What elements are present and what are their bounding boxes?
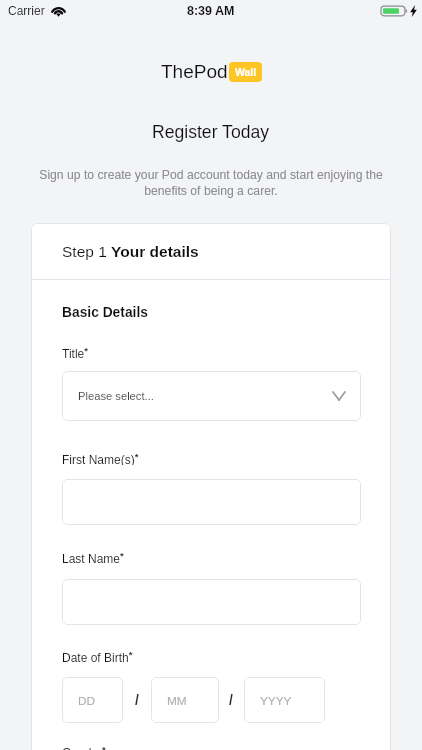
staticText: Sign up to create your Pod account today… [33, 168, 389, 197]
staticText: Last Name* [62, 550, 124, 564]
staticText: Register Today [152, 122, 270, 142]
staticText: 8:39 AM [187, 4, 235, 18]
staticText: DD [78, 694, 96, 707]
staticText: ThePod [161, 61, 228, 82]
staticText: MM [167, 694, 187, 707]
staticText: / [229, 692, 233, 708]
button[interactable]: Month [151, 677, 219, 723]
staticText: Carrier [8, 4, 45, 17]
button[interactable]: First Names [62, 479, 361, 525]
staticText: / [135, 692, 139, 708]
staticText: YYYY [260, 694, 292, 707]
staticText: Date of Birth* [62, 649, 133, 663]
button[interactable]: Last Name [62, 579, 361, 625]
other: Battery charging [381, 5, 407, 17]
staticText: Title* [62, 345, 88, 359]
staticText: Please select... [78, 390, 154, 403]
button[interactable]: Title [62, 371, 361, 421]
staticText: Gender* [62, 744, 106, 750]
button[interactable]: Day [62, 677, 123, 723]
button[interactable]: Year [244, 677, 325, 723]
staticText: First Name(s)* [62, 451, 139, 465]
staticText: Wall [235, 66, 257, 78]
staticText: Step 1 Your details [62, 243, 199, 260]
staticText: Basic Details [62, 305, 148, 320]
other: Wi-Fi [51, 5, 66, 17]
